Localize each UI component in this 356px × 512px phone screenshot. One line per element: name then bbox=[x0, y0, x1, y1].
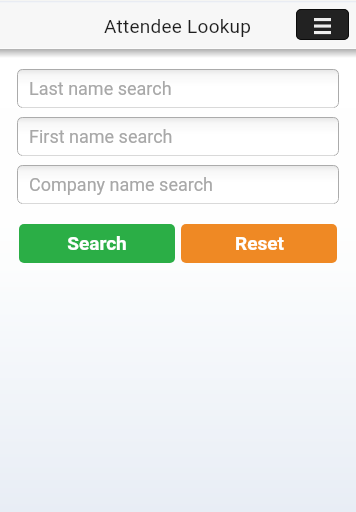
button[interactable]: Open navigation menu bbox=[296, 9, 349, 40]
button[interactable]: Company name search bbox=[17, 165, 339, 204]
staticText: First name search bbox=[29, 126, 173, 147]
button[interactable]: Search bbox=[19, 224, 175, 263]
staticText: Company name search bbox=[29, 174, 214, 195]
staticText: Last name search bbox=[29, 78, 172, 99]
button[interactable]: Last name search bbox=[17, 69, 339, 108]
staticText: Attendee Lookup bbox=[104, 15, 252, 37]
button[interactable]: Reset bbox=[181, 224, 337, 263]
button[interactable]: First name search bbox=[17, 117, 339, 156]
staticText: Reset bbox=[235, 232, 284, 254]
staticText: Search bbox=[67, 232, 127, 254]
